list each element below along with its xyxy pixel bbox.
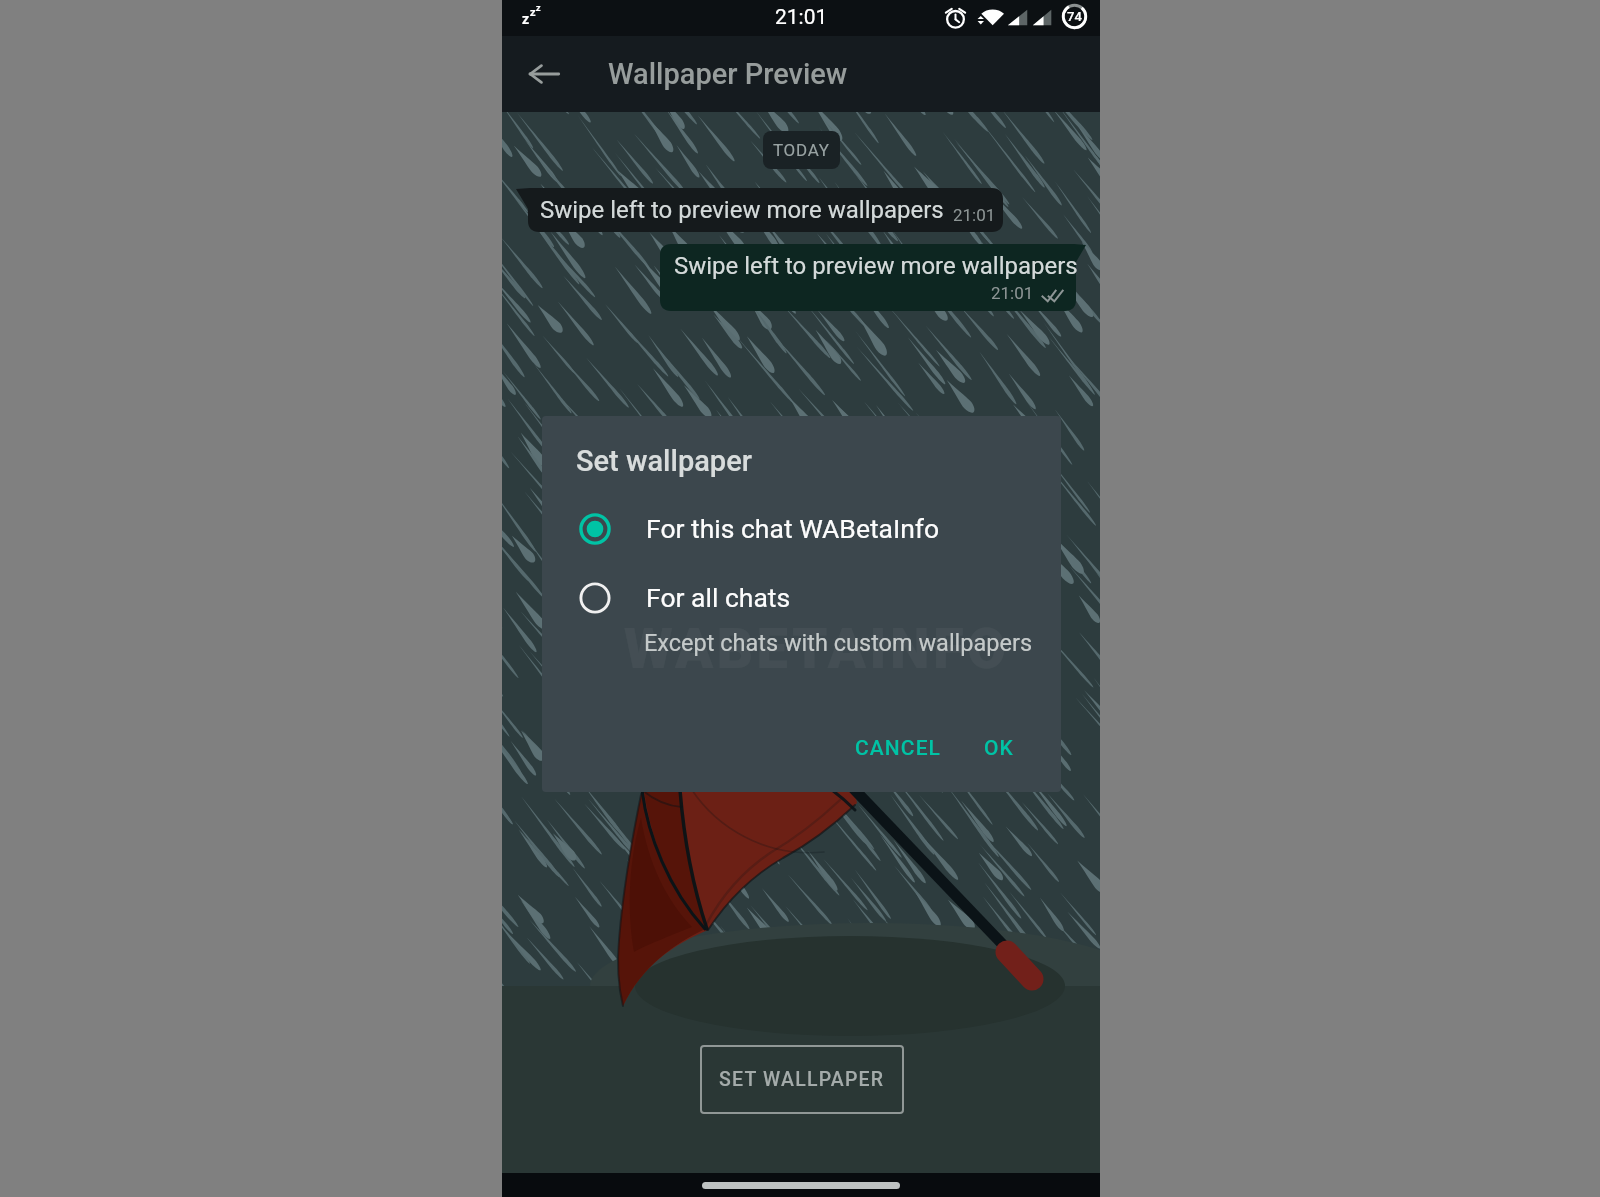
staticText: TODAY bbox=[773, 140, 830, 160]
staticText: Except chats with custom wallpapers bbox=[644, 629, 1033, 657]
staticText: 74 bbox=[1067, 9, 1082, 24]
staticText: For all chats bbox=[646, 582, 791, 613]
button[interactable]: Back bbox=[522, 52, 566, 96]
staticText: 21:01 bbox=[991, 283, 1034, 303]
button[interactable]: SET WALLPAPER bbox=[700, 1045, 904, 1114]
staticText: SET WALLPAPER bbox=[719, 1068, 885, 1091]
staticText: z bbox=[536, 3, 541, 14]
button[interactable]: OK bbox=[968, 722, 1030, 774]
staticText: z bbox=[530, 6, 536, 19]
staticText: Swipe left to preview more wallpapers bbox=[674, 252, 1078, 280]
staticText: 21:01 bbox=[953, 205, 996, 225]
button[interactable]: CANCEL bbox=[839, 722, 958, 774]
staticText: z bbox=[522, 11, 530, 27]
staticText: For this chat WABetaInfo bbox=[646, 513, 940, 544]
staticText: Wallpaper Preview bbox=[608, 57, 848, 91]
staticText: OK bbox=[984, 736, 1014, 761]
staticText: WABETAINFO bbox=[624, 616, 1010, 682]
button[interactable]: For this chat WABetaInfo bbox=[542, 498, 1061, 560]
button[interactable]: For all chats bbox=[542, 567, 1061, 629]
staticText: CANCEL bbox=[855, 736, 942, 761]
staticText: Swipe left to preview more wallpapers bbox=[540, 196, 944, 224]
staticText: Set wallpaper bbox=[576, 444, 752, 478]
staticText: 21:01 bbox=[775, 5, 828, 30]
